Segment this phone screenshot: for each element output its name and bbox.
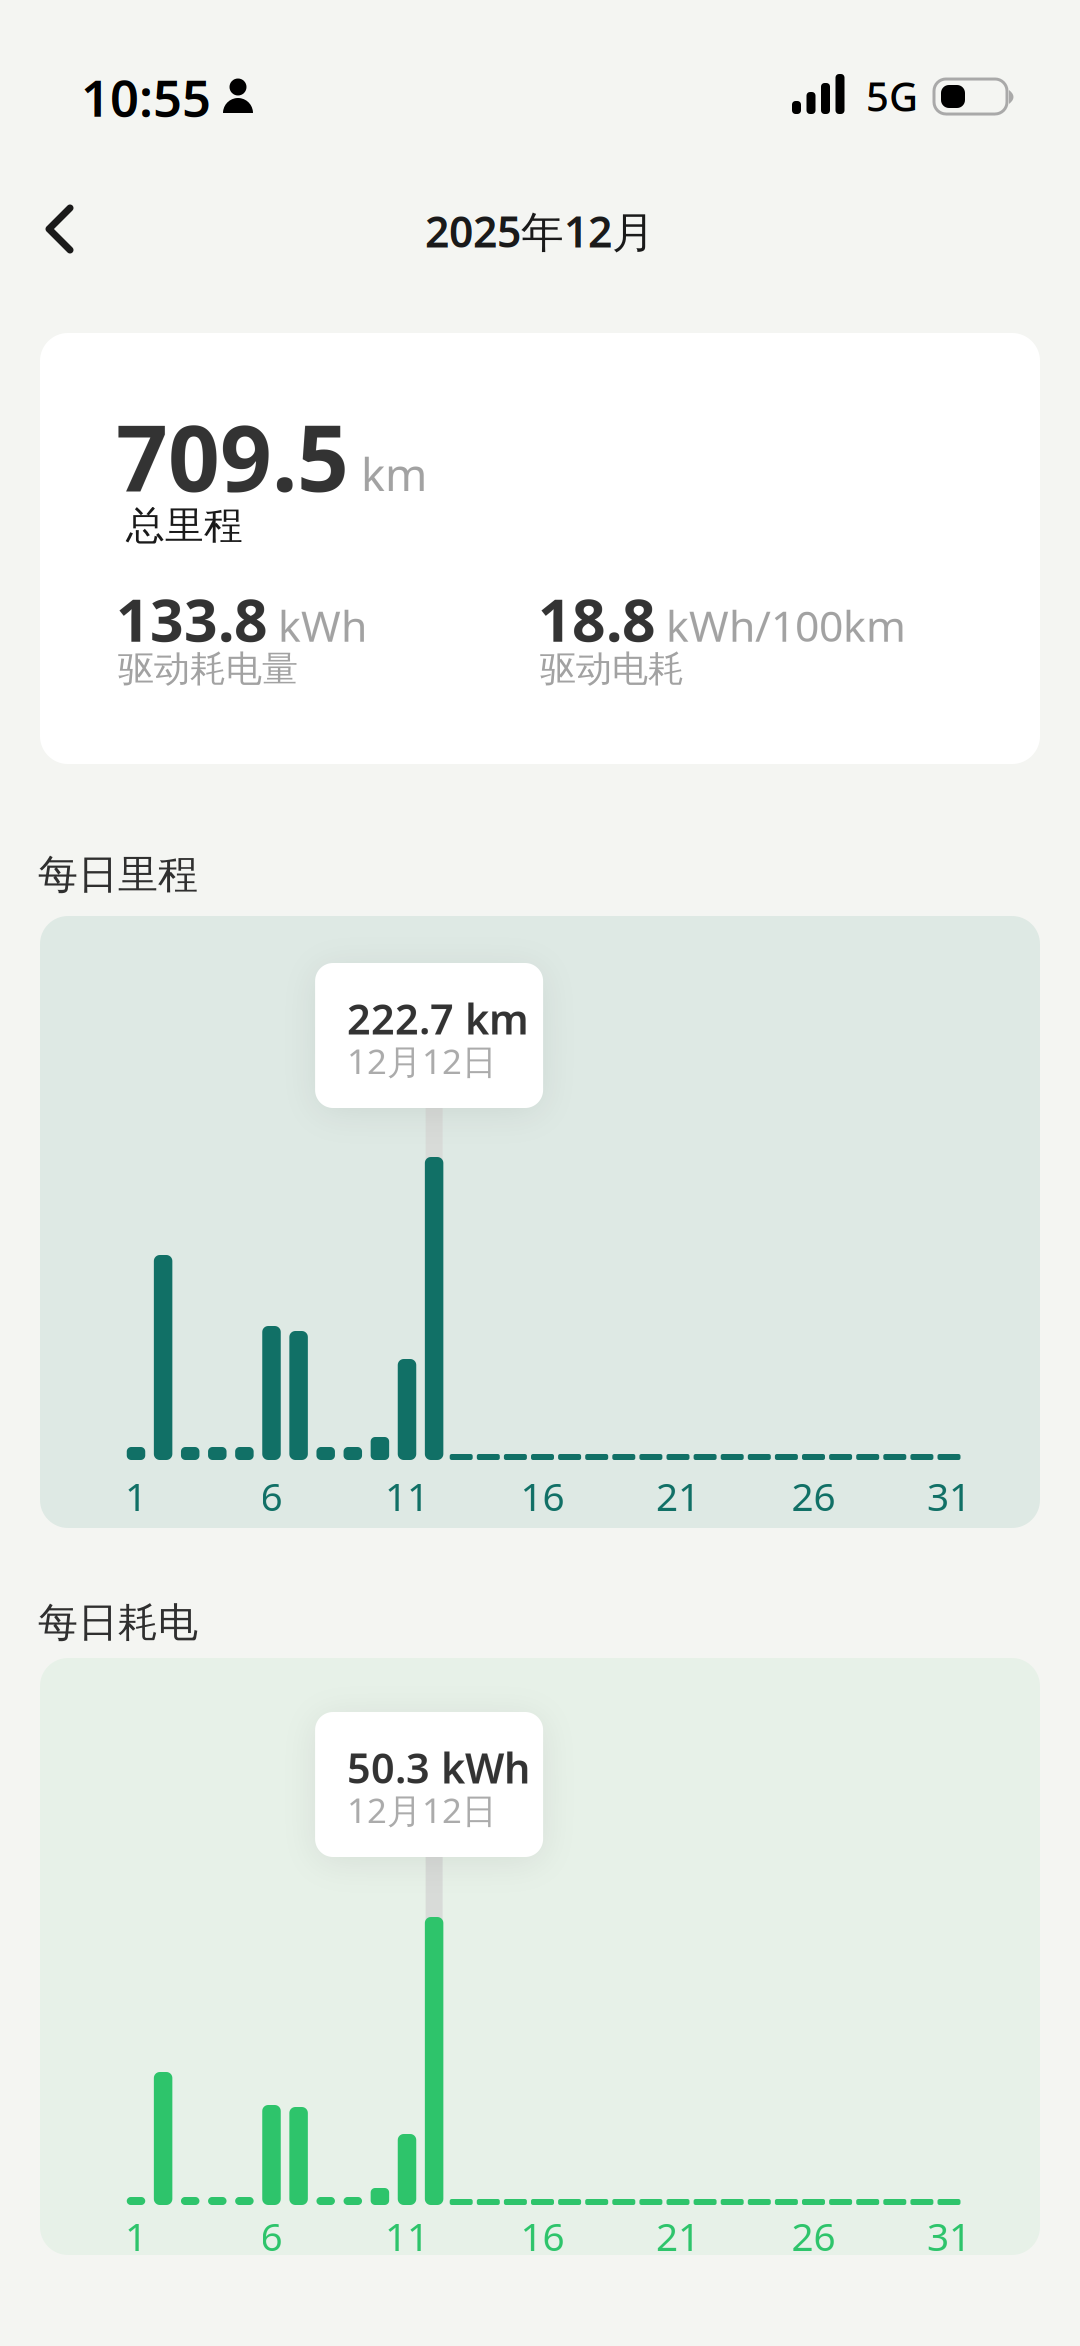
staticText: 驱动耗电量	[118, 647, 298, 691]
staticText: 6	[260, 1470, 282, 1522]
staticText: 31	[927, 2210, 971, 2262]
staticText: 每日里程	[38, 850, 198, 899]
staticText: 222.7 km	[347, 991, 529, 1046]
staticText: 总里程	[126, 502, 243, 549]
staticText: 133.8	[116, 580, 268, 658]
staticText: 50.3 kWh	[347, 1740, 530, 1795]
staticText: 16	[520, 2210, 564, 2262]
staticText: 10:55	[81, 63, 211, 131]
staticText: 18.8	[538, 580, 656, 658]
staticText: 21	[656, 2210, 700, 2262]
staticText: 31	[927, 1470, 971, 1522]
staticText: 驱动电耗	[540, 647, 684, 691]
staticText: 26	[791, 1470, 835, 1522]
staticText: 1	[125, 2210, 147, 2262]
staticText: 21	[656, 1470, 700, 1522]
staticText: 709.5	[116, 396, 349, 516]
staticText: 11	[385, 1470, 429, 1522]
staticText: 12月12日	[347, 1038, 497, 1084]
staticText: 每日耗电	[38, 1598, 198, 1647]
staticText: 12月12日	[347, 1787, 497, 1833]
staticText: 11	[385, 2210, 429, 2262]
staticText: 16	[520, 1470, 564, 1522]
staticText: km	[361, 444, 427, 504]
staticText: 2025年12月	[425, 203, 655, 259]
staticText: kWh/100km	[666, 597, 906, 653]
staticText: 1	[125, 1470, 147, 1522]
staticText: 26	[791, 2210, 835, 2262]
staticText: 5G	[866, 69, 918, 122]
staticText: 6	[260, 2210, 282, 2262]
button[interactable]: Back	[32, 192, 87, 266]
staticText: kWh	[278, 597, 367, 653]
